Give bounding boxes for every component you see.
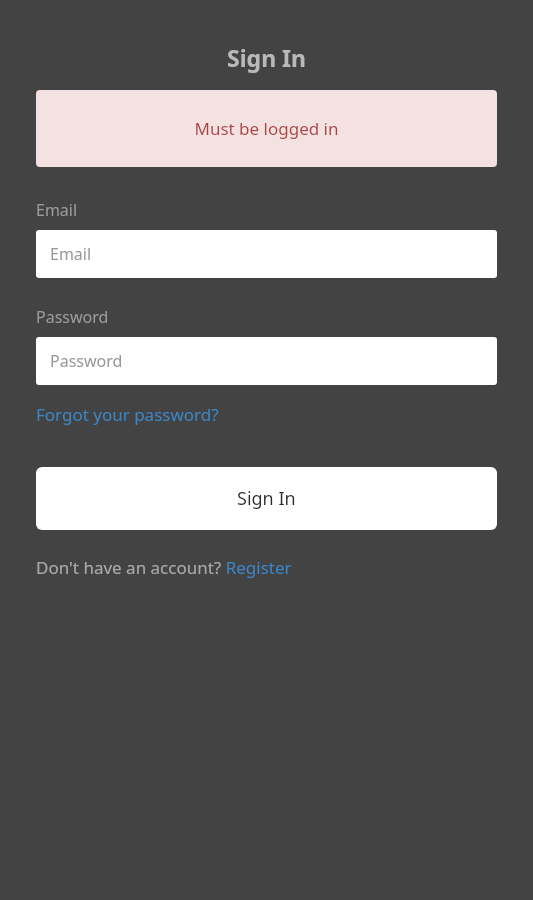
staticText: Don't have an account? Register xyxy=(36,556,292,579)
button[interactable]: Don't have an account? Register xyxy=(36,556,292,579)
button[interactable]: Password xyxy=(36,337,497,385)
staticText: Forgot your password? xyxy=(36,403,219,426)
staticText: Must be logged in xyxy=(194,117,339,140)
button[interactable]: Must be logged in xyxy=(36,90,497,167)
staticText: Email xyxy=(36,199,78,221)
button[interactable]: Email xyxy=(36,230,497,278)
staticText: Sign In xyxy=(36,42,497,73)
staticText: Sign In xyxy=(237,486,296,511)
staticText: Password xyxy=(36,306,109,328)
staticText: Password xyxy=(50,350,123,372)
button[interactable]: Sign In xyxy=(36,467,497,530)
button[interactable]: Forgot your password? xyxy=(36,403,219,426)
staticText: Email xyxy=(50,243,92,265)
